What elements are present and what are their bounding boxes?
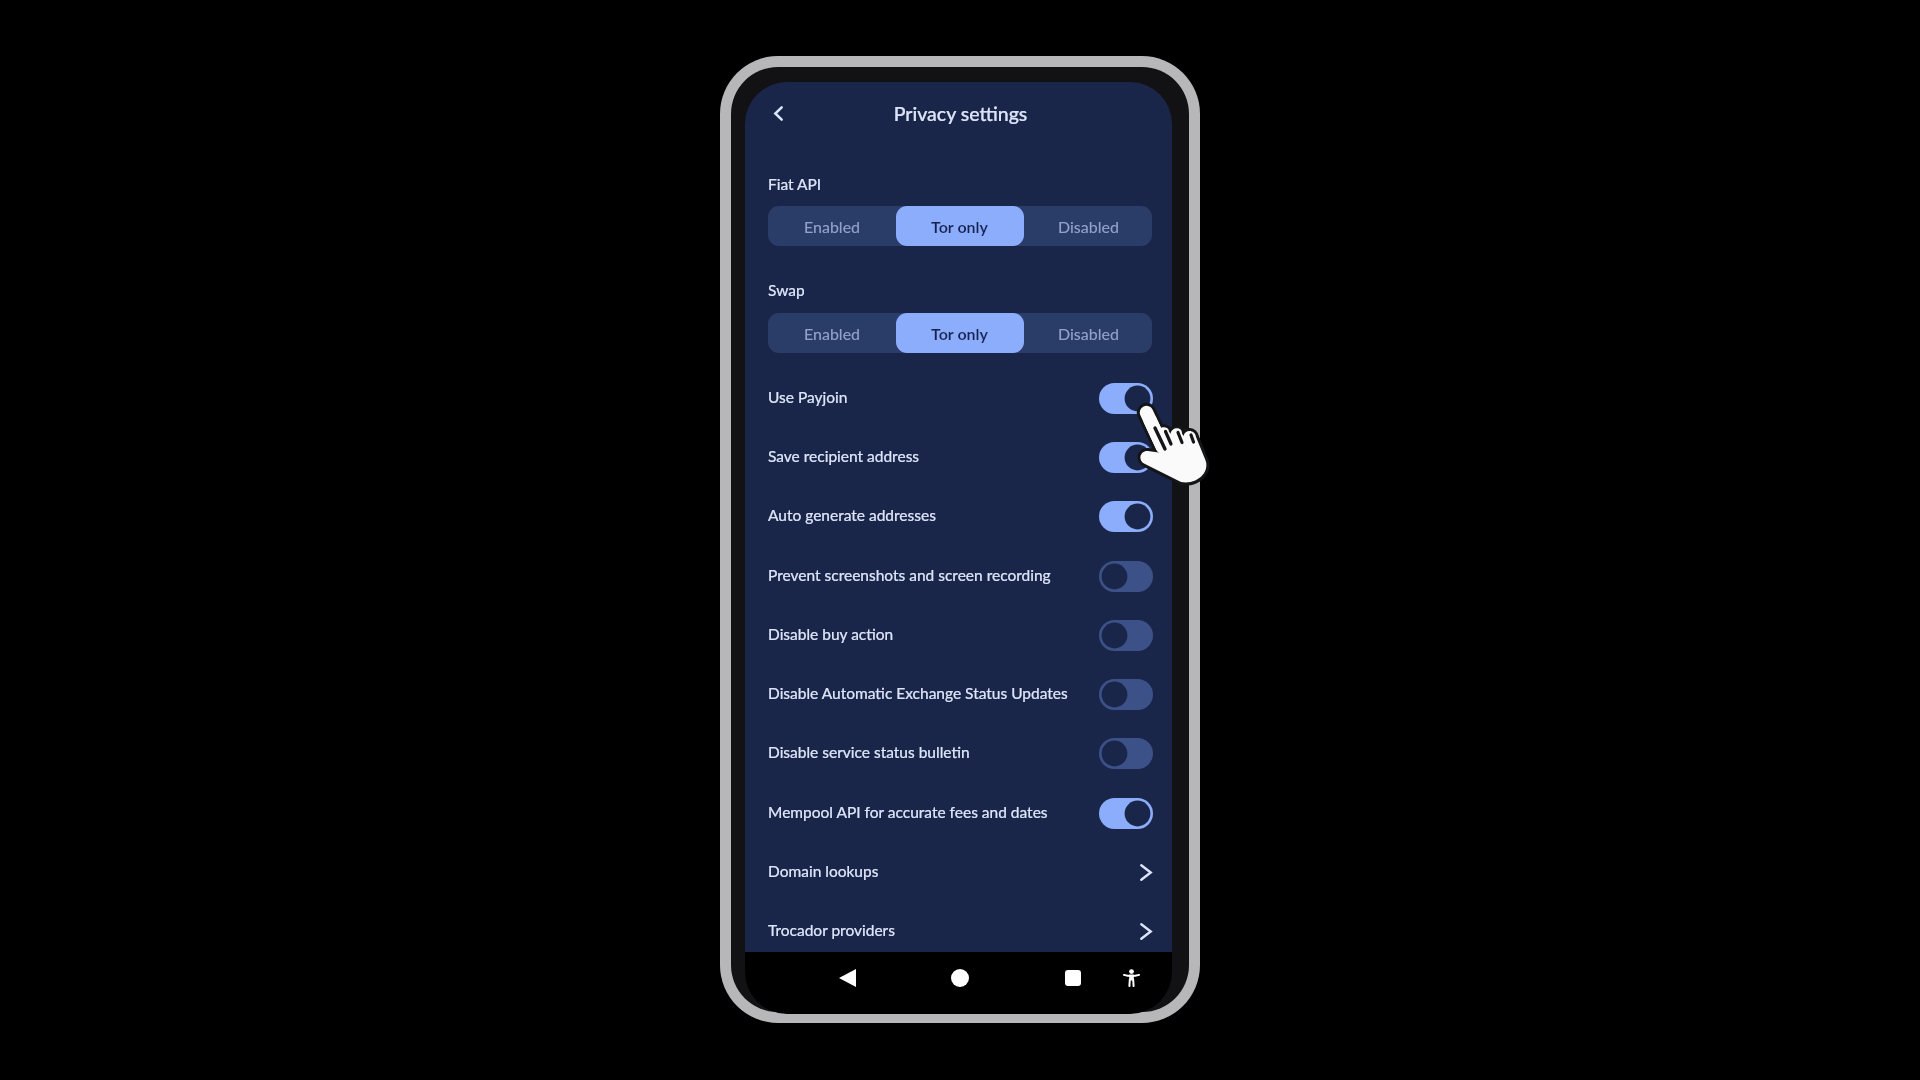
button[interactable]: Auto generate addresses <box>745 486 1172 545</box>
button[interactable]: Save recipient address <box>745 427 1172 486</box>
button[interactable]: Disable service status bulletin <box>745 723 1172 782</box>
staticText: Enabled <box>804 324 861 343</box>
button[interactable]: Home <box>939 957 981 999</box>
button[interactable]: Disable Automatic Exchange Status Update… <box>745 664 1172 723</box>
staticText: Trocador providers <box>768 921 1140 940</box>
staticText: Enabled <box>804 217 861 236</box>
button[interactable]: Trocador providers <box>745 901 1172 952</box>
button[interactable]: Enabled <box>768 313 896 353</box>
button[interactable]: Disabled <box>1024 313 1152 353</box>
staticText: Disabled <box>1058 217 1119 236</box>
staticText: Tor only <box>931 217 989 236</box>
staticText: Tor only <box>931 324 989 343</box>
button[interactable]: Use Payjoin <box>745 368 1172 427</box>
button[interactable]: Mempool API for accurate fees and dates <box>745 783 1172 842</box>
staticText: Domain lookups <box>768 862 1140 881</box>
staticText: Prevent screenshots and screen recording <box>768 566 1099 585</box>
button[interactable]: Recent apps <box>1052 957 1094 999</box>
staticText: Use Payjoin <box>768 388 1099 407</box>
staticText: Disable Automatic Exchange Status Update… <box>768 684 1099 703</box>
staticText: Save recipient address <box>768 447 1099 466</box>
button[interactable]: Tor only <box>896 313 1024 353</box>
staticText: Disable buy action <box>768 625 1099 644</box>
button[interactable]: Disable buy action <box>745 605 1172 664</box>
staticText: Privacy settings <box>747 102 1172 125</box>
staticText: Disabled <box>1058 324 1119 343</box>
staticText: Swap <box>768 281 805 300</box>
button[interactable]: Accessibility <box>1110 957 1152 999</box>
button[interactable]: Enabled <box>768 206 896 246</box>
button[interactable]: Tor only <box>896 206 1024 246</box>
staticText: Fiat API <box>768 175 822 194</box>
staticText: Auto generate addresses <box>768 506 1099 525</box>
button[interactable]: Domain lookups <box>745 842 1172 901</box>
button[interactable]: Disabled <box>1024 206 1152 246</box>
staticText: Disable service status bulletin <box>768 743 1099 762</box>
staticText: Mempool API for accurate fees and dates <box>768 803 1099 822</box>
button[interactable]: Back <box>754 92 798 136</box>
button[interactable]: Prevent screenshots and screen recording <box>745 546 1172 605</box>
button[interactable]: Back <box>826 957 868 999</box>
